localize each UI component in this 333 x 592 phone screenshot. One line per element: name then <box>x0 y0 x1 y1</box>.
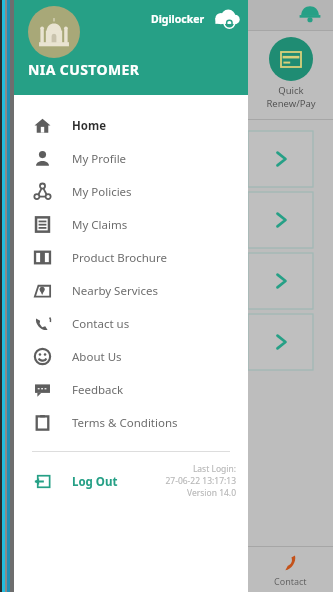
button[interactable]: Feedback <box>14 373 248 406</box>
button[interactable]: My Claims <box>14 208 248 241</box>
staticText: NIA CUSTOMER <box>28 60 140 79</box>
other: Notifications <box>297 0 323 26</box>
staticText: Feedback <box>72 382 124 398</box>
staticText: Home <box>72 118 107 134</box>
staticText: Digilocker <box>151 12 205 26</box>
button[interactable]: Terms & Conditions <box>14 406 248 439</box>
staticText: My Profile <box>72 151 127 167</box>
staticText: Version 14.0 <box>187 487 236 499</box>
button[interactable]: Contact <box>248 547 333 592</box>
staticText: Renew/Pay <box>266 97 316 110</box>
staticText: Terms & Conditions <box>72 415 178 431</box>
button[interactable]: Profile avatar <box>28 6 80 58</box>
button[interactable]: My Profile <box>14 142 248 175</box>
staticText: Quick <box>278 84 304 97</box>
staticText: Contact us <box>72 316 130 332</box>
button[interactable]: My Policies <box>14 175 248 208</box>
button[interactable]: Home <box>14 109 248 142</box>
button[interactable]: Product Brochure <box>14 241 248 274</box>
staticText: Nearby Services <box>72 283 158 299</box>
staticText: Last Login: <box>192 463 236 475</box>
staticText: Contact <box>274 575 307 587</box>
staticText: My Claims <box>72 217 128 233</box>
button[interactable]: Nearby Services <box>14 274 248 307</box>
staticText: About Us <box>72 349 122 365</box>
button[interactable] <box>248 253 313 309</box>
button[interactable]: Log Out <box>34 473 118 490</box>
button[interactable] <box>248 131 313 187</box>
button[interactable]: About Us <box>14 340 248 373</box>
button[interactable] <box>248 314 313 370</box>
button[interactable] <box>248 192 313 248</box>
staticText: Product Brochure <box>72 250 167 266</box>
button[interactable]: Digilocker <box>151 8 240 30</box>
staticText: 27-06-22 13:17:13 <box>165 475 236 487</box>
staticText: My Policies <box>72 184 132 200</box>
staticText: Log Out <box>72 474 118 490</box>
button[interactable]: Quick <box>248 37 333 110</box>
button[interactable]: Contact us <box>14 307 248 340</box>
